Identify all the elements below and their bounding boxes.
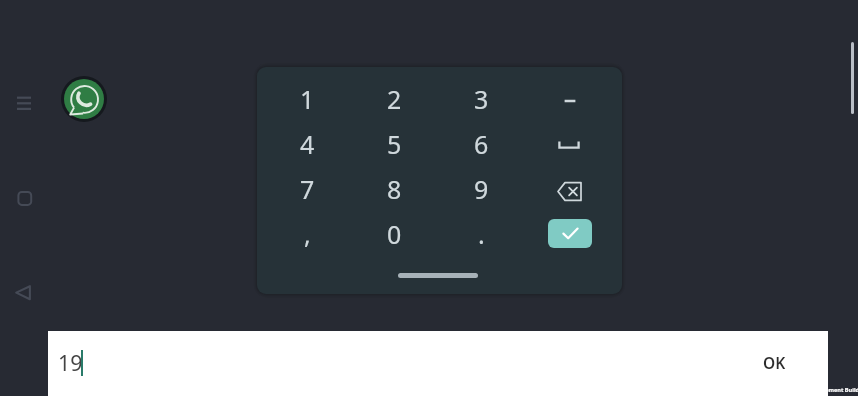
staticText: OK	[763, 352, 786, 373]
button[interactable]: Recents	[12, 186, 36, 210]
staticText: 5	[387, 127, 402, 161]
staticText: ,	[304, 217, 311, 251]
button[interactable]: Menu	[9, 89, 39, 117]
staticText: 6	[474, 127, 489, 161]
staticText: 7	[300, 172, 315, 206]
button[interactable]: Back	[12, 282, 36, 306]
button[interactable]: 7	[264, 169, 350, 213]
staticText: 19	[58, 348, 83, 377]
button[interactable]	[527, 124, 613, 168]
button[interactable]: 1	[264, 79, 350, 123]
staticText: 9	[474, 172, 489, 206]
staticText: 8	[387, 172, 402, 206]
button[interactable]: Enter	[548, 219, 592, 248]
button[interactable]: ,	[264, 214, 350, 258]
button[interactable]: OK	[743, 343, 806, 384]
button[interactable]: 19	[59, 343, 86, 384]
button[interactable]: 3	[438, 79, 524, 123]
button[interactable]: .	[438, 214, 524, 258]
staticText: 4	[300, 127, 315, 161]
button[interactable]	[527, 169, 613, 213]
button[interactable]: 9	[438, 169, 524, 213]
staticText: 0	[387, 217, 402, 251]
button[interactable]: 2	[351, 79, 437, 123]
staticText: 2	[387, 82, 402, 116]
button[interactable]: 6	[438, 124, 524, 168]
button[interactable]: 5	[351, 124, 437, 168]
staticText: .	[478, 217, 485, 251]
staticText: 3	[474, 82, 489, 116]
button[interactable]	[527, 79, 613, 123]
button[interactable]: WhatsApp	[61, 76, 107, 122]
staticText: Development Build	[806, 386, 858, 394]
button[interactable]: 0	[351, 214, 437, 258]
staticText: 1	[300, 82, 315, 116]
button[interactable]: 8	[351, 169, 437, 213]
button[interactable]: 4	[264, 124, 350, 168]
